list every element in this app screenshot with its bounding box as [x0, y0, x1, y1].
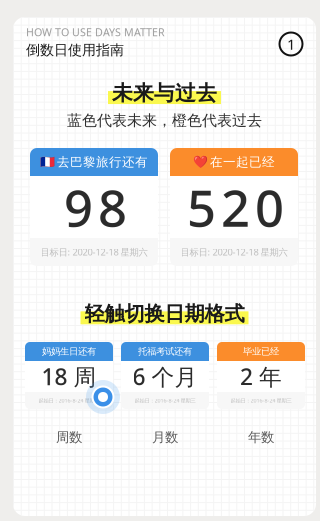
- staticText: 托福考试还有: [138, 346, 192, 357]
- button[interactable]: 妈妈生日还有: [25, 342, 113, 409]
- staticText: 18 周: [41, 361, 96, 391]
- button[interactable]: Page 1: [279, 32, 303, 56]
- staticText: 周数: [56, 429, 82, 445]
- staticText: 6 个月: [132, 361, 197, 391]
- staticText: 目标日: 2020-12-18 星期六: [40, 246, 147, 258]
- staticText: 年数: [248, 429, 274, 445]
- staticText: 2 年: [240, 361, 282, 391]
- button[interactable]: 🇫🇷: [30, 148, 158, 266]
- staticText: 1: [287, 34, 295, 54]
- staticText: 去巴黎旅行还有: [57, 154, 148, 170]
- button[interactable]: 毕业已经: [217, 342, 305, 409]
- staticText: 毕业已经: [243, 346, 279, 357]
- staticText: 月数: [152, 429, 178, 445]
- staticText: 520: [187, 172, 284, 241]
- staticText: 未来与过去: [112, 80, 217, 106]
- staticText: 轻触切换日期格式: [84, 301, 244, 326]
- staticText: 🇫🇷: [40, 155, 55, 169]
- button[interactable]: ❤️: [170, 148, 298, 266]
- staticText: 起始日：2016-8-24 星期三: [230, 397, 291, 404]
- staticText: HOW TO USE DAYS MATTER: [26, 25, 165, 39]
- staticText: 起始日：2016-8-24 星期三: [38, 397, 99, 404]
- staticText: 目标日: 2020-12-18 星期六: [180, 246, 287, 258]
- button[interactable]: 托福考试还有: [121, 342, 209, 409]
- staticText: 妈妈生日还有: [42, 346, 96, 357]
- staticText: 倒数日使用指南: [26, 41, 124, 59]
- staticText: 起始日：2016-8-24 星期三: [134, 397, 195, 404]
- staticText: 蓝色代表未来，橙色代表过去: [67, 111, 262, 130]
- staticText: 在一起已经: [210, 154, 275, 170]
- staticText: ❤️: [193, 155, 208, 169]
- staticText: 98: [64, 172, 127, 241]
